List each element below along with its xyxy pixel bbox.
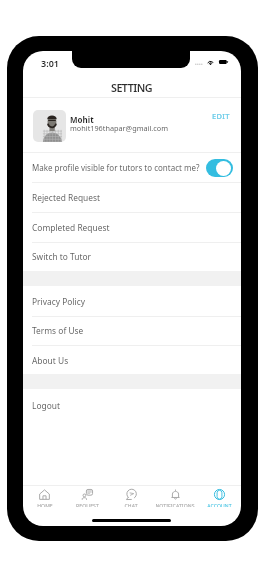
button[interactable] bbox=[23, 104, 241, 148]
button[interactable]: Privacy Policy bbox=[23, 287, 241, 316]
button[interactable]: REQUEST bbox=[66, 489, 109, 507]
staticText: ACCOUNT bbox=[207, 503, 232, 507]
staticText: EDIT bbox=[212, 111, 230, 121]
staticText: mohit196thapar@gmail.com bbox=[70, 123, 169, 133]
staticText: SETTING bbox=[111, 80, 153, 95]
staticText: HOME bbox=[37, 503, 53, 507]
button[interactable]: Switch to Tutor bbox=[23, 242, 241, 271]
staticText: CHAT bbox=[124, 503, 138, 507]
staticText: Make profile visible for tutors to conta… bbox=[32, 162, 200, 173]
button[interactable]: CHAT bbox=[109, 489, 153, 507]
staticText: About Us bbox=[32, 355, 69, 366]
staticText: Privacy Policy bbox=[32, 296, 85, 307]
button[interactable]: Logout bbox=[23, 391, 241, 420]
button[interactable]: NOTIFICATIONS bbox=[153, 489, 197, 507]
button[interactable]: HOME bbox=[23, 489, 66, 507]
staticText: Mohit bbox=[70, 114, 94, 125]
staticText: REQUEST bbox=[76, 503, 99, 507]
staticText: Rejected Request bbox=[32, 192, 101, 203]
button[interactable]: Make profile visible for tutors to conta… bbox=[23, 153, 241, 182]
staticText: 3:01 bbox=[41, 57, 59, 69]
button[interactable]: Terms of Use bbox=[23, 316, 241, 345]
staticText: Logout bbox=[32, 400, 60, 411]
staticText: NOTIFICATIONS bbox=[155, 503, 195, 507]
staticText: Completed Request bbox=[32, 222, 110, 233]
button[interactable]: About Us bbox=[23, 346, 241, 375]
staticText: Terms of Use bbox=[32, 325, 84, 336]
staticText: Switch to Tutor bbox=[32, 251, 92, 262]
button[interactable]: ACCOUNT bbox=[197, 489, 241, 507]
button[interactable]: EDIT bbox=[207, 107, 235, 125]
button[interactable]: Rejected Request bbox=[23, 183, 241, 212]
button[interactable]: Completed Request bbox=[23, 213, 241, 242]
